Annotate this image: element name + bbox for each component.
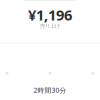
staticText: 木 <box>48 71 52 76</box>
staticText: ¥1,196 <box>28 5 72 24</box>
staticText: 売り上げ <box>40 23 60 29</box>
staticText: 水 <box>5 71 9 76</box>
staticText: 金 <box>91 71 95 76</box>
staticText: 2時間30分 <box>33 86 66 95</box>
button[interactable]: 2時間30分 <box>0 84 100 96</box>
